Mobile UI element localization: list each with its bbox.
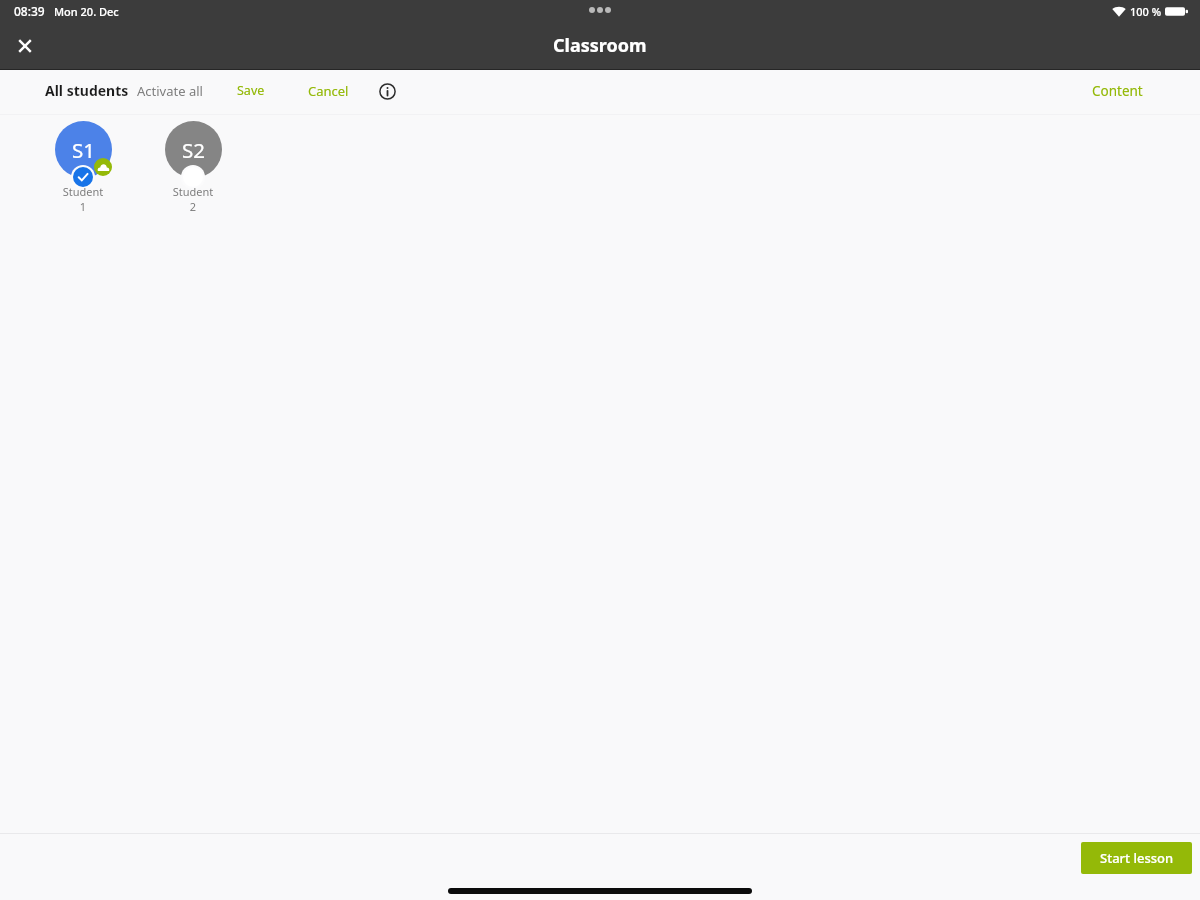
staticText: S2 (182, 136, 205, 164)
button[interactable]: Close (8, 29, 42, 63)
button[interactable]: Cancel (304, 76, 353, 106)
staticText: 100 % (1130, 4, 1162, 19)
staticText: Content (1092, 82, 1143, 100)
staticText: Mon 20. Dec (54, 4, 119, 19)
staticText: Cancel (308, 82, 349, 100)
button[interactable]: Information (375, 79, 399, 103)
staticText: Student 1 (61, 184, 105, 214)
staticText: 08:39 (14, 3, 45, 19)
staticText: Activate all (137, 82, 203, 100)
staticText: Student 2 (171, 184, 215, 214)
staticText: S1 (72, 136, 95, 164)
staticText: Save (237, 82, 265, 99)
button[interactable]: S1 (28, 121, 138, 215)
staticText: All students (45, 81, 129, 100)
button[interactable]: Activate all (133, 76, 207, 106)
button[interactable]: All students (41, 75, 133, 106)
staticText: Classroom (553, 33, 647, 58)
button[interactable]: Content (1088, 76, 1147, 106)
button[interactable]: Save (233, 76, 269, 105)
staticText: Start lesson (1100, 849, 1174, 867)
button[interactable]: S2 (138, 121, 248, 215)
button[interactable]: Start lesson (1081, 842, 1192, 874)
